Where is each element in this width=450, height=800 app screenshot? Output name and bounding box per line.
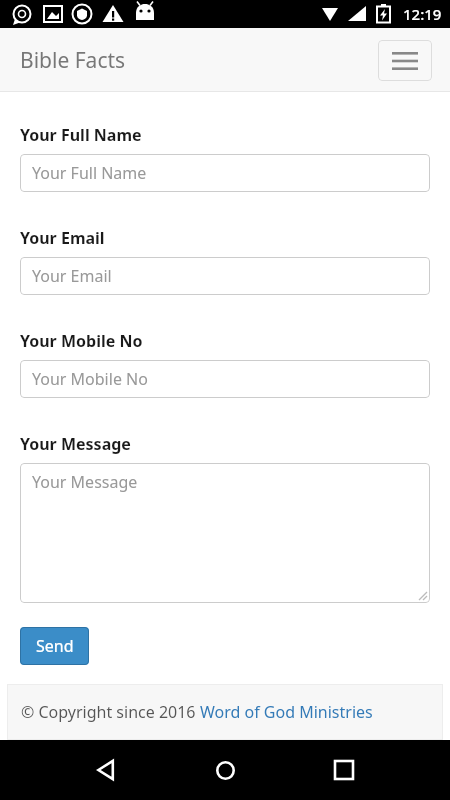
staticText: © Copyright since 2016 <box>21 701 200 723</box>
button[interactable]: Back <box>82 746 130 794</box>
button[interactable]: Your Mobile No <box>20 360 430 398</box>
staticText: Your Mobile No <box>20 330 143 352</box>
button[interactable]: Menu <box>378 40 432 81</box>
button[interactable]: Send <box>20 627 89 665</box>
staticText: Your Email <box>20 227 105 249</box>
button[interactable]: Home <box>201 746 249 794</box>
staticText: Your Message <box>20 433 131 455</box>
staticText: Your Full Name <box>20 124 142 146</box>
button[interactable]: Your Full Name <box>20 154 430 192</box>
staticText: 12:19 <box>403 4 442 24</box>
staticText: Send <box>36 635 74 657</box>
staticText: Your Mobile No <box>32 368 148 390</box>
staticText: Your Full Name <box>32 162 147 184</box>
button[interactable]: Your Email <box>20 257 430 295</box>
button[interactable]: Word of God Ministries <box>200 701 373 723</box>
button[interactable]: Recent apps <box>320 746 368 794</box>
staticText: Your Message <box>32 471 138 493</box>
staticText: Your Email <box>32 265 112 287</box>
staticText: Bible Facts <box>20 46 126 75</box>
button[interactable]: Your Message <box>20 463 430 603</box>
